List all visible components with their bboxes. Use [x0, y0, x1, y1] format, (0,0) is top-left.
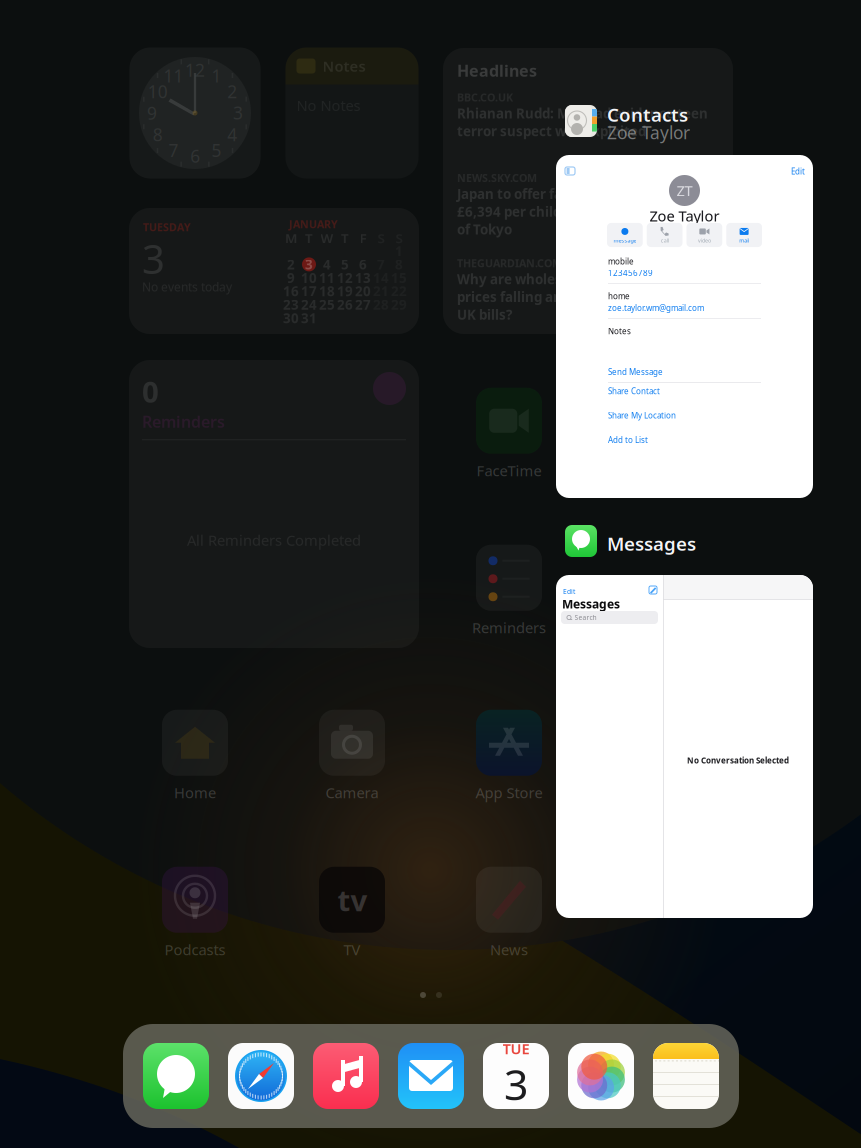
staticText: UK bills? [457, 306, 512, 323]
staticText: Share My Location [608, 410, 676, 421]
staticText: 28 [373, 296, 389, 313]
staticText: zoe.taylor.wm@gmail.com [608, 303, 704, 313]
staticText: 31 [301, 309, 317, 327]
button[interactable]: Music [313, 1043, 379, 1109]
staticText: 27 [355, 296, 371, 313]
staticText: 3 [504, 1055, 528, 1112]
staticText: of Tokyo [457, 220, 512, 238]
staticText: 4 [323, 255, 331, 273]
staticText: TV [343, 940, 360, 959]
staticText: tv [337, 880, 367, 919]
staticText: No Conversation Selected [687, 755, 789, 766]
staticText: ZT [676, 181, 692, 200]
button[interactable]: Safari [228, 1043, 294, 1109]
button[interactable]: Sidebar [564, 166, 576, 176]
staticText: Reminders [472, 618, 546, 637]
button[interactable]: Calendar [483, 1043, 549, 1109]
staticText: Messages [607, 531, 696, 556]
staticText: Contacts [607, 102, 688, 127]
staticText: 5 [341, 255, 349, 273]
button[interactable]: video [686, 223, 722, 247]
button[interactable]: call [647, 223, 683, 247]
staticText: Send Message [608, 366, 663, 377]
staticText: 4 [227, 123, 237, 146]
button[interactable]: mail [726, 223, 762, 247]
staticText: Japan to offer families [457, 185, 602, 203]
staticText: 3 [305, 255, 313, 273]
staticText: video [698, 237, 711, 244]
staticText: F [359, 229, 366, 247]
staticText: 9 [147, 101, 157, 124]
staticText: 30 [283, 309, 299, 327]
staticText: Messages [562, 596, 620, 612]
staticText: 10 [301, 269, 317, 287]
button[interactable]: message [607, 223, 643, 247]
staticText: 11 [319, 269, 335, 287]
staticText: No events today [142, 279, 232, 295]
staticText: 20 [355, 282, 371, 300]
staticText: 17 [301, 282, 317, 300]
staticText: prices falling and will it cut [457, 288, 634, 306]
button[interactable]: Mail [398, 1043, 464, 1109]
staticText: W [320, 229, 333, 247]
staticText: T [341, 229, 349, 247]
staticText: 23 [283, 296, 299, 313]
staticText: BBC.CO.UK [457, 90, 513, 104]
button[interactable]: Add to List [608, 434, 761, 451]
button[interactable]: Messages [143, 1043, 209, 1109]
staticText: 13 [355, 269, 371, 287]
button[interactable]: Messages [556, 525, 813, 918]
button[interactable]: Share Contact [608, 386, 761, 402]
button[interactable]: Send Message [608, 366, 761, 383]
staticText: 0 [142, 372, 159, 411]
staticText: 3 [233, 101, 243, 124]
staticText: S [395, 229, 402, 247]
staticText: Zoe Taylor [649, 206, 719, 225]
staticText: 25 [319, 296, 335, 313]
staticText: mobile [608, 256, 634, 267]
staticText: App Store [475, 783, 542, 802]
button[interactable]: Share My Location [608, 410, 761, 426]
staticText: Zoe Taylor [607, 121, 690, 144]
staticText: £6,394 per child to move out [457, 203, 644, 220]
staticText: M [285, 229, 297, 247]
staticText: Home [174, 783, 216, 802]
staticText: 1 [211, 64, 221, 87]
button[interactable]: Edit [791, 166, 805, 177]
button[interactable]: Photos [568, 1043, 634, 1109]
staticText: All Reminders Completed [187, 530, 361, 550]
staticText: 7 [168, 139, 178, 162]
staticText: 11 [163, 64, 183, 87]
button[interactable]: Notes [653, 1043, 719, 1109]
staticText: 123456789 [608, 268, 653, 278]
staticText: 5 [211, 139, 221, 162]
staticText: 8 [395, 255, 403, 273]
staticText: Edit [563, 587, 575, 596]
staticText: Camera [325, 783, 378, 802]
staticText: 24 [301, 296, 317, 313]
staticText: 6 [359, 255, 367, 273]
staticText: message [613, 237, 636, 244]
staticText: 6 [190, 144, 200, 167]
staticText: Headlines [457, 60, 537, 81]
staticText: THEGUARDIAN.COM [457, 256, 562, 270]
button[interactable]: Contacts [556, 105, 813, 498]
staticText: Reminders [142, 411, 225, 432]
staticText: Search [574, 613, 596, 622]
staticText: 22 [391, 282, 407, 300]
button[interactable]: Edit [563, 587, 575, 596]
staticText: 29 [391, 296, 407, 313]
staticText: News [490, 940, 528, 959]
staticText: home [608, 291, 630, 301]
staticText: mail [739, 237, 749, 244]
staticText: call [661, 237, 669, 244]
staticText: 2 [287, 255, 295, 273]
staticText: 12 [337, 269, 353, 287]
staticText: 12 [185, 58, 205, 81]
staticText: JANUARY [289, 217, 338, 231]
staticText: 3 [142, 232, 165, 285]
button[interactable]: New Message [648, 585, 658, 595]
